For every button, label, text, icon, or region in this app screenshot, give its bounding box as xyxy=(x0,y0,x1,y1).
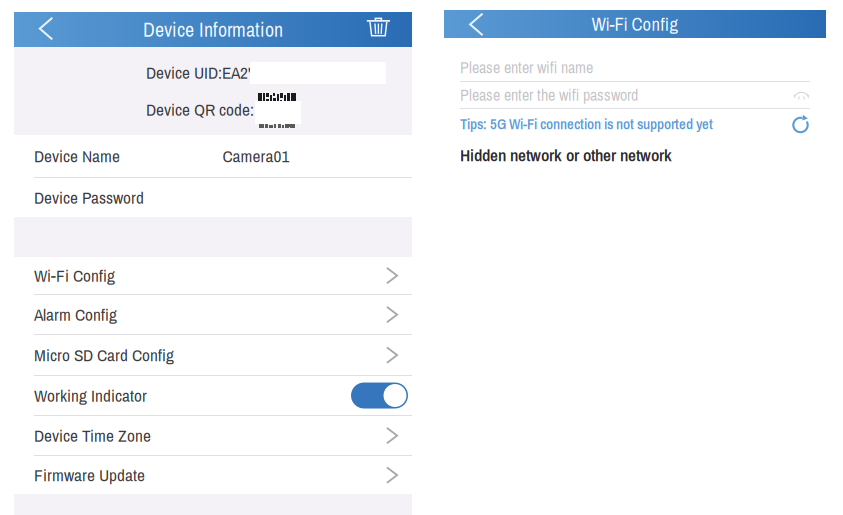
staticText: Wi-Fi Config xyxy=(591,11,678,36)
staticText: Please enter the wifi password xyxy=(460,84,638,106)
staticText: Device Information xyxy=(143,16,283,43)
button[interactable]: Device Time Zone xyxy=(14,416,412,455)
staticText: Device Password xyxy=(34,186,144,209)
staticText: Tips: 5G Wi-Fi connection is not support… xyxy=(460,114,713,134)
button[interactable]: Hidden network or other network xyxy=(460,139,810,171)
button[interactable]: Micro SD Card Config xyxy=(14,335,412,375)
staticText: Micro SD Card Config xyxy=(34,343,174,367)
button[interactable]: Firmware Update xyxy=(14,456,412,494)
staticText: Alarm Config xyxy=(34,303,117,326)
staticText: Hidden network or other network xyxy=(460,143,672,167)
staticText: Please enter wifi name xyxy=(460,57,593,78)
staticText: Camera01 xyxy=(222,144,289,168)
button[interactable]: Alarm Config xyxy=(14,295,412,334)
staticText: Wi-Fi Config xyxy=(34,264,115,287)
button[interactable]: Working Indicator xyxy=(14,376,412,415)
staticText: Device Name xyxy=(34,144,120,168)
staticText: Device UID:EA2' xyxy=(146,61,251,84)
staticText: Device QR code: xyxy=(146,98,254,121)
button[interactable]: Back xyxy=(14,12,56,47)
staticText: Working Indicator xyxy=(34,384,147,407)
button[interactable]: Delete xyxy=(368,12,412,47)
staticText: Device Time Zone xyxy=(34,424,151,447)
staticText: Firmware Update xyxy=(34,463,145,487)
button[interactable]: Wi-Fi Config xyxy=(14,257,412,294)
button[interactable]: Back xyxy=(444,10,484,38)
button[interactable]: Refresh xyxy=(791,114,810,134)
button[interactable]: Show password xyxy=(793,90,810,100)
